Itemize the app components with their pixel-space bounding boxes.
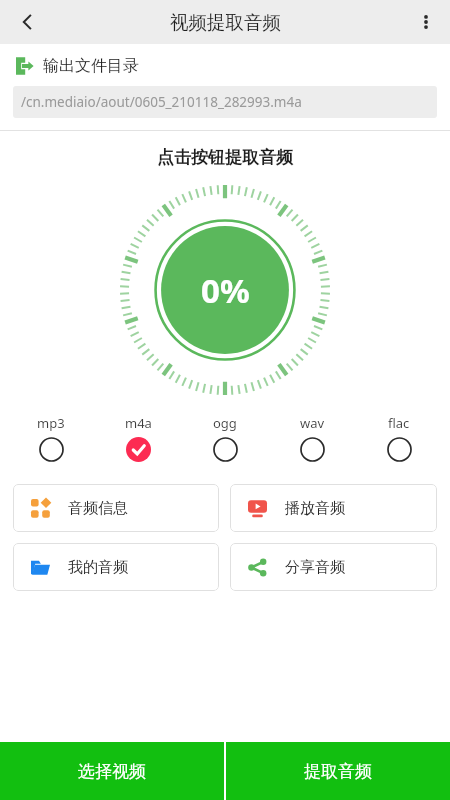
staticText: 视频提取音频 [170, 11, 281, 34]
staticText: 我的音频 [68, 558, 128, 577]
staticText: 点击按钮提取音频 [0, 147, 450, 168]
button[interactable]: 选择视频 [0, 742, 224, 800]
button[interactable]: Back [0, 0, 54, 44]
staticText: flac [388, 414, 410, 432]
button[interactable]: wav [283, 414, 341, 462]
staticText: 0% [201, 268, 250, 313]
button[interactable]: More options [402, 0, 450, 44]
button[interactable]: flac [370, 414, 428, 462]
staticText: ogg [213, 414, 237, 432]
staticText: 输出文件目录 [43, 56, 139, 76]
staticText: /cn.mediaio/aout/0605_210118_282993.m4a [21, 93, 302, 111]
button[interactable]: 播放音频 [230, 484, 437, 532]
staticText: 音频信息 [68, 499, 128, 518]
button[interactable]: 提取音频 [226, 742, 450, 800]
button[interactable]: mp3 [22, 414, 80, 462]
staticText: 提取音频 [304, 761, 372, 782]
staticText: 播放音频 [285, 499, 345, 518]
staticText: mp3 [37, 414, 65, 432]
button[interactable]: m4a [109, 414, 167, 462]
staticText: wav [300, 414, 325, 432]
button[interactable]: 音频信息 [13, 484, 219, 532]
staticText: m4a [125, 414, 152, 432]
staticText: 选择视频 [78, 761, 146, 782]
staticText: 分享音频 [285, 558, 345, 577]
button[interactable]: 分享音频 [230, 543, 437, 591]
button[interactable]: 我的音频 [13, 543, 219, 591]
button[interactable]: ogg [196, 414, 254, 462]
